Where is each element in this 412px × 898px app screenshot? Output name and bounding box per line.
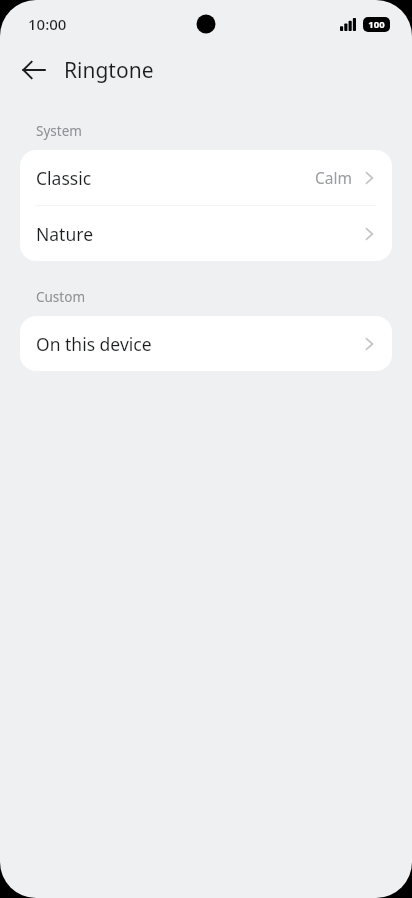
staticText: Custom — [36, 288, 86, 306]
staticText: Ringtone — [64, 56, 154, 85]
staticText: System — [36, 122, 82, 140]
button[interactable]: Nature — [20, 206, 392, 261]
staticText: 100 — [368, 18, 385, 31]
staticText: On this device — [36, 332, 358, 356]
button[interactable]: Classic — [20, 150, 392, 205]
staticText: Calm — [315, 167, 352, 188]
staticText: 10:00 — [28, 14, 67, 34]
button[interactable]: On this device — [20, 316, 392, 371]
staticText: Nature — [36, 222, 358, 246]
button[interactable]: Back — [12, 48, 56, 92]
staticText: Classic — [36, 166, 315, 190]
